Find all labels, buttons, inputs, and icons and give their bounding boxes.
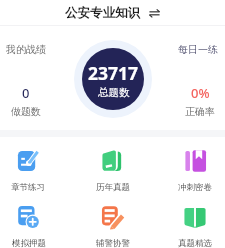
staticText: 公安专业知识 xyxy=(65,5,140,21)
button[interactable]: Switch subject xyxy=(148,7,160,19)
button[interactable]: 冲刺密卷 xyxy=(164,144,225,194)
button[interactable]: 辅警协警 xyxy=(82,200,144,248)
button[interactable]: 真题精选 xyxy=(164,200,225,248)
button[interactable]: 0% xyxy=(180,84,220,118)
staticText: 总题数 xyxy=(98,86,130,99)
staticText: 做题数 xyxy=(11,105,41,118)
staticText: 历年真题 xyxy=(96,182,130,193)
staticText: 正确率 xyxy=(185,105,215,118)
button[interactable]: 23717 xyxy=(82,48,144,110)
staticText: 模拟押题 xyxy=(12,238,46,248)
staticText: 每日一练 xyxy=(178,43,218,56)
staticText: 23717 xyxy=(88,61,139,85)
button[interactable]: 0 xyxy=(6,84,46,118)
staticText: 辅警协警 xyxy=(96,238,130,248)
staticText: 0 xyxy=(22,84,30,102)
button[interactable]: 章节练习 xyxy=(0,144,59,194)
staticText: 章节练习 xyxy=(11,182,45,193)
staticText: 我的战绩 xyxy=(6,43,46,56)
button[interactable]: 历年真题 xyxy=(82,144,144,194)
staticText: 0% xyxy=(191,84,210,102)
staticText: 冲刺密卷 xyxy=(178,182,212,193)
button[interactable]: 模拟押题 xyxy=(0,200,60,248)
staticText: 真题精选 xyxy=(178,238,212,248)
